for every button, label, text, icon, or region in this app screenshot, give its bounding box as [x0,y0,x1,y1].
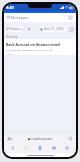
button[interactable]: Filter [27,27,31,31]
button[interactable]: Bank Account verification email [4,39,76,55]
staticText: n-banking.com [31,137,53,141]
staticText: Messages [11,15,29,20]
staticText: Bank Account verification email [6,42,60,47]
staticText: 12:45 [6,52,13,55]
button[interactable]: Share [35,143,45,153]
button[interactable]: Text size [7,137,13,141]
button[interactable]: Forward [21,143,31,153]
button[interactable]: All Status [5,26,24,32]
button[interactable]: Back [8,143,18,153]
button[interactable]: More options [68,15,73,20]
staticText: Yesterday [6,35,18,39]
staticText: Aa [8,137,12,141]
staticText: 9:41 [6,5,14,10]
button[interactable]: Tabs [62,143,72,153]
staticText: to: Thursday, September 2024 10:41 AM [6,48,53,51]
staticText: Nov 15, 2024 [44,27,64,31]
button[interactable]: Bookmarks [49,143,59,153]
button[interactable]: Reload [68,136,73,141]
staticText: All Status [6,27,20,31]
button[interactable]: Search [69,27,74,32]
button[interactable]: Nov 15, 2024 [39,26,66,32]
